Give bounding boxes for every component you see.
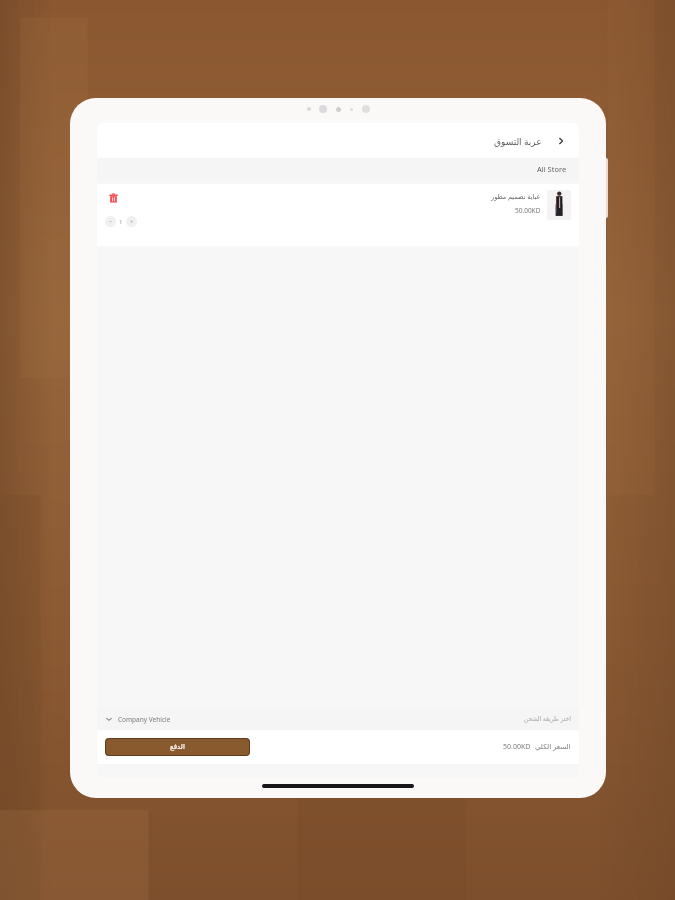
staticText: عباية تصميم مطور bbox=[491, 192, 541, 201]
button[interactable]: Back bbox=[552, 132, 570, 150]
staticText: + bbox=[130, 218, 134, 226]
staticText: عربة التسوق bbox=[494, 135, 542, 147]
staticText: 50.00KD bbox=[515, 206, 541, 215]
staticText: 1 bbox=[119, 218, 123, 226]
staticText: السعر الكلي bbox=[535, 742, 571, 752]
button[interactable]: Company Vehicle bbox=[97, 708, 579, 730]
button[interactable]: Increase quantity bbox=[126, 216, 137, 227]
staticText: − bbox=[109, 218, 113, 226]
button[interactable]: Delete item bbox=[106, 191, 120, 205]
button[interactable]: عباية تصميم مطور bbox=[97, 184, 579, 246]
button[interactable]: All Store bbox=[97, 158, 579, 180]
staticText: 50.00KD bbox=[503, 742, 531, 752]
button[interactable]: الدفع bbox=[106, 739, 249, 755]
staticText: Company Vehicle bbox=[118, 715, 171, 724]
staticText: اختر طريقة الشحن bbox=[524, 715, 571, 723]
staticText: All Store bbox=[537, 164, 567, 174]
button[interactable]: Decrease quantity bbox=[105, 216, 116, 227]
staticText: الدفع bbox=[170, 743, 185, 751]
